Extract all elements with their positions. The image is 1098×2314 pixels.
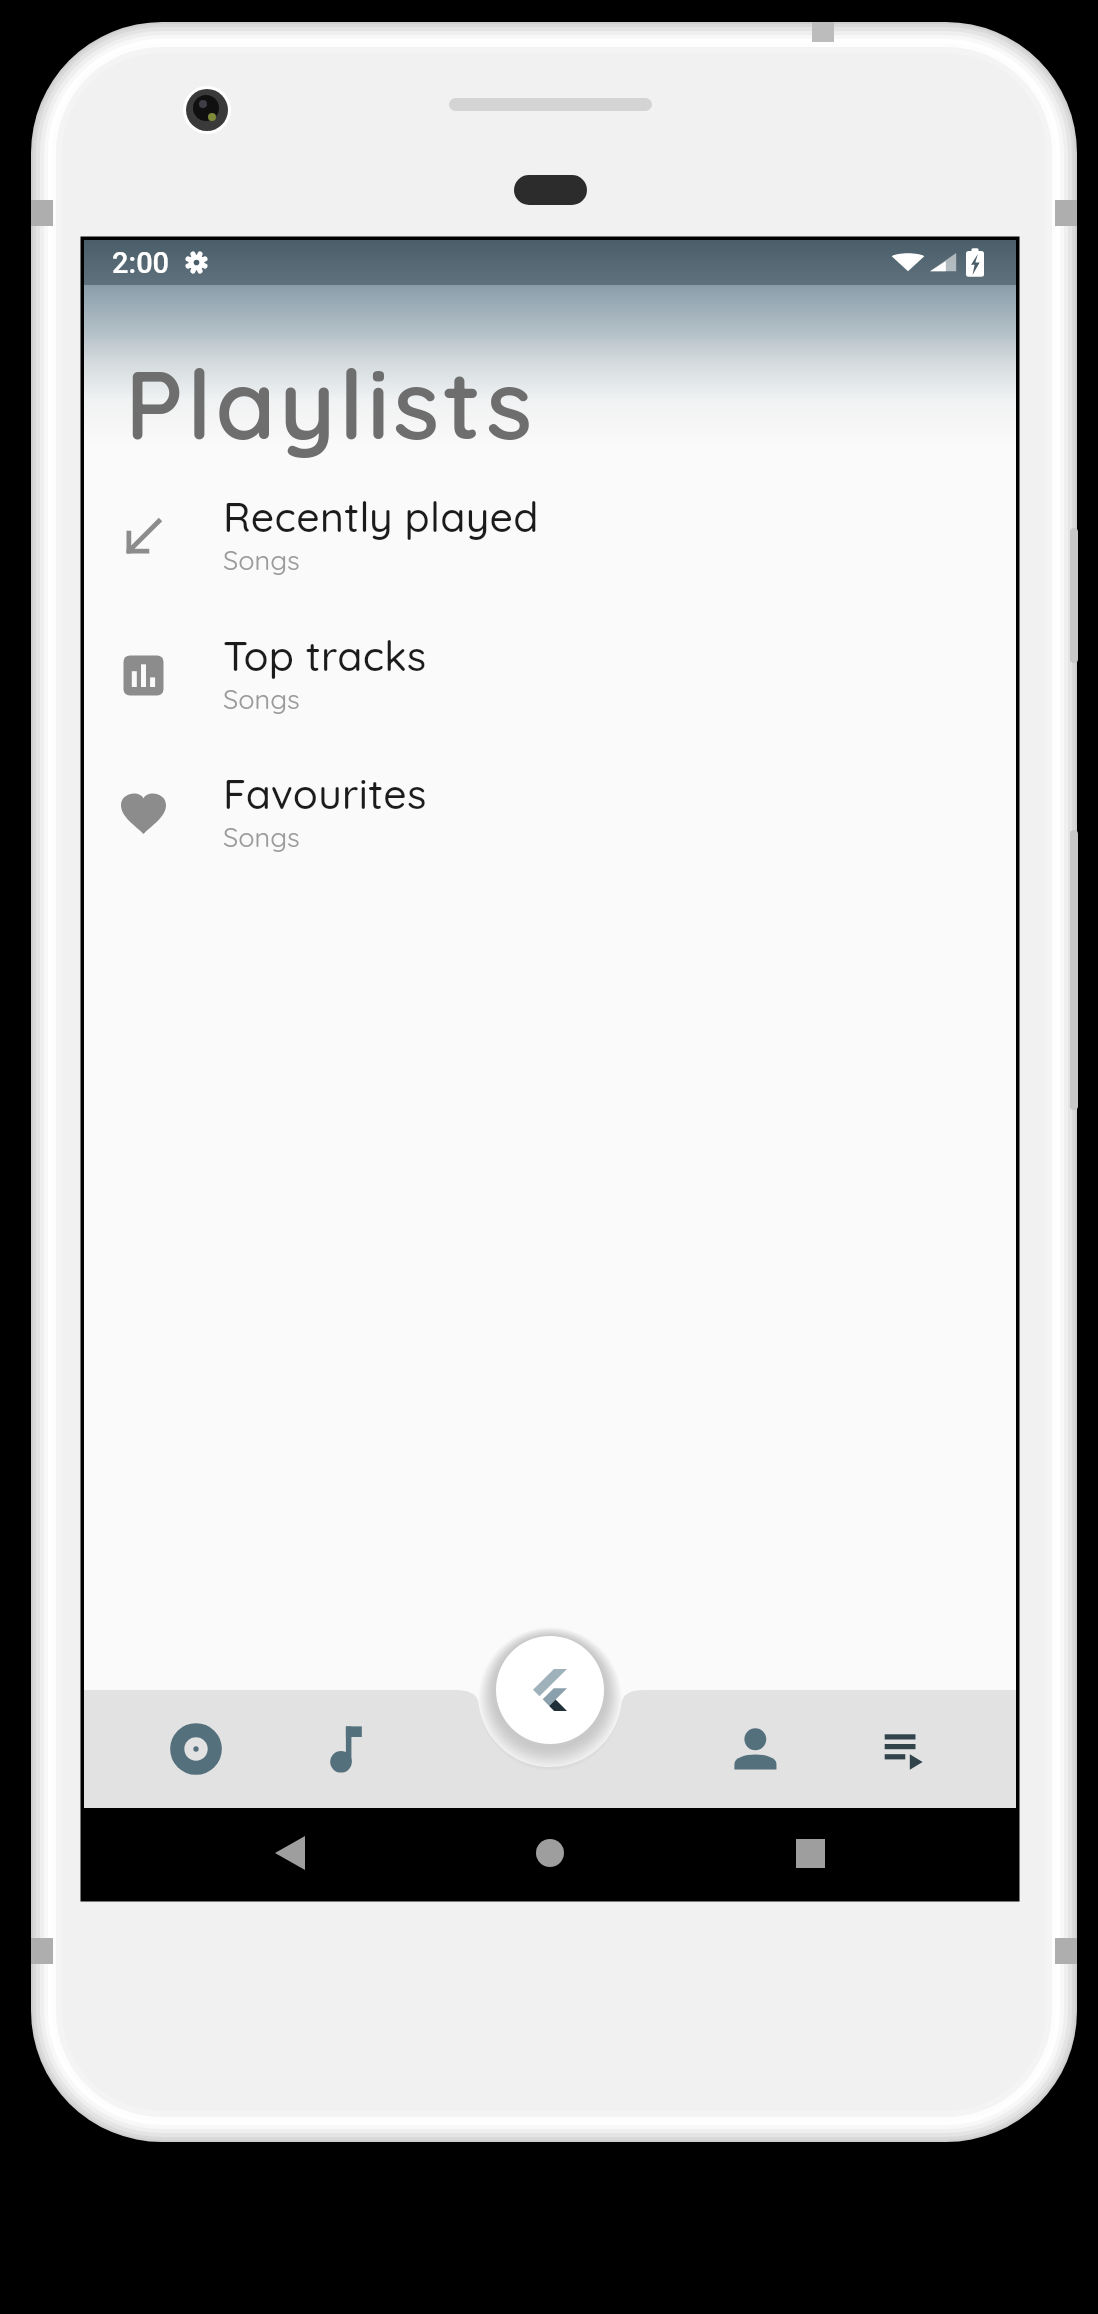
button[interactable]: Recently played [84,473,1016,593]
button[interactable]: Artists [697,1690,813,1808]
button[interactable]: Songs [288,1690,404,1808]
button[interactable]: Home [510,1808,590,1898]
button[interactable]: Recents [770,1808,850,1898]
button[interactable]: Favourites [84,750,1016,870]
staticText: Playlists [125,342,536,463]
staticText: Favourites [223,768,427,819]
staticText: Songs [223,543,300,577]
button[interactable]: Albums [138,1690,254,1808]
staticText: Songs [223,820,300,854]
button[interactable]: Playlists [845,1690,961,1808]
button[interactable]: Back [250,1808,330,1898]
button[interactable]: Top tracks [84,612,1016,732]
staticText: Songs [223,682,300,716]
staticText: 2:00 [112,246,170,280]
staticText: Top tracks [223,630,427,681]
button[interactable]: Play [496,1636,604,1744]
staticText: Recently played [223,491,539,542]
